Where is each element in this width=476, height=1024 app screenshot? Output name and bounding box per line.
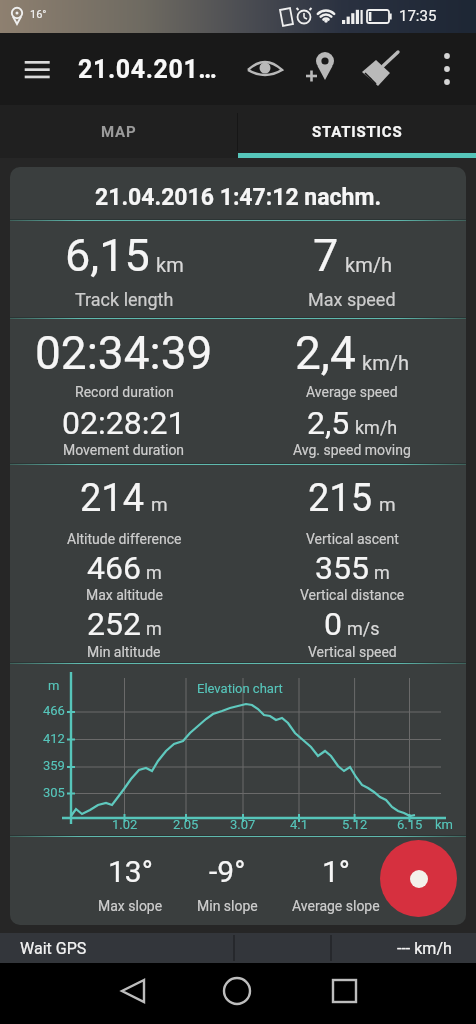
staticText: 7	[313, 229, 339, 282]
staticText: Vertical speed	[308, 644, 397, 660]
staticText: 21.04.201…	[78, 55, 218, 84]
staticText: 6.15	[397, 817, 423, 832]
staticText: 21.04.2016 1:47:12 nachm.	[95, 184, 382, 211]
staticText: 0	[324, 605, 342, 643]
staticText: Max speed	[308, 289, 396, 310]
button[interactable]: MAP	[0, 105, 238, 158]
staticText: km/h	[355, 417, 398, 438]
staticText: 02:28:21	[62, 404, 186, 442]
staticText: 17:35	[399, 7, 437, 25]
staticText: km/h	[362, 351, 409, 374]
staticText: m	[379, 493, 396, 515]
staticText: m	[146, 618, 162, 639]
staticText: Altitude difference	[67, 531, 182, 547]
staticText: 13°	[108, 854, 153, 889]
button[interactable]	[14, 47, 60, 91]
button[interactable]	[243, 48, 287, 92]
staticText: 1°	[322, 854, 351, 889]
staticText: 4.1	[290, 817, 309, 832]
staticText: 2,4	[295, 326, 356, 380]
button[interactable]	[380, 840, 457, 917]
staticText: -9°	[209, 854, 246, 889]
button[interactable]: STATISTICS	[238, 105, 476, 158]
button[interactable]	[208, 965, 268, 1021]
staticText: Elevation chart	[197, 681, 283, 696]
staticText: 5.12	[342, 817, 368, 832]
staticText: 252	[87, 605, 141, 643]
staticText: 355	[315, 549, 369, 587]
button[interactable]	[362, 48, 406, 92]
staticText: 305	[43, 785, 65, 800]
staticText: Max altitude	[86, 587, 163, 603]
button[interactable]	[303, 48, 347, 92]
staticText: 1.02	[112, 817, 138, 832]
staticText: Movement duration	[63, 442, 185, 458]
staticText: Average speed	[306, 384, 398, 400]
staticText: 466	[43, 703, 65, 718]
staticText: m	[48, 678, 60, 693]
staticText: --- km/h	[397, 939, 452, 958]
staticText: Track length	[75, 289, 174, 310]
staticText: 2,5	[307, 404, 350, 442]
staticText: Avg. speed moving	[293, 442, 411, 458]
staticText: 214	[80, 476, 145, 521]
staticText: km/h	[345, 253, 392, 276]
staticText: Vertical distance	[300, 587, 405, 603]
staticText: m	[374, 562, 390, 583]
staticText: Record duration	[75, 384, 174, 400]
button[interactable]	[313, 965, 373, 1021]
staticText: Average slope	[292, 898, 380, 914]
staticText: Wait GPS	[20, 939, 87, 958]
staticText: m	[151, 493, 168, 515]
staticText: 466	[87, 549, 141, 587]
staticText: 16°	[30, 8, 47, 21]
staticText: 2.05	[173, 817, 199, 832]
staticText: Vertical ascent	[306, 531, 399, 547]
staticText: Max slope	[98, 898, 163, 914]
staticText: 412	[43, 731, 65, 746]
staticText: Min altitude	[87, 644, 161, 660]
staticText: 02:34:39	[35, 326, 213, 380]
staticText: 6,15	[65, 229, 150, 282]
staticText: km	[435, 817, 453, 832]
staticText: STATISTICS	[312, 123, 403, 141]
staticText: Min slope	[197, 898, 258, 914]
staticText: 3.07	[230, 817, 256, 832]
button[interactable]	[103, 965, 163, 1021]
staticText: MAP	[101, 123, 137, 141]
button[interactable]	[428, 48, 466, 92]
staticText: m/s	[347, 618, 380, 639]
staticText: m	[146, 562, 162, 583]
staticText: 215	[308, 476, 373, 521]
staticText: km	[156, 253, 184, 276]
staticText: 359	[43, 758, 65, 773]
